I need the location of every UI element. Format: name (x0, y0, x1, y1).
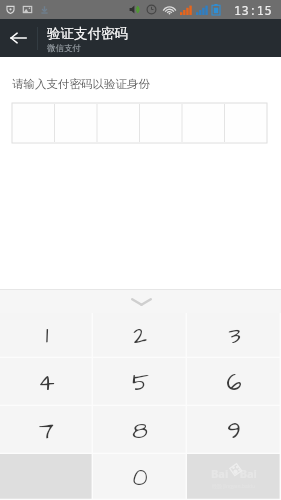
button[interactable]: 8 (93, 406, 187, 454)
staticText: 微信支付 (47, 43, 81, 54)
staticText: 5 (132, 366, 149, 399)
staticText: 6 (226, 366, 242, 399)
staticText: 8 (132, 414, 148, 447)
staticText: 验证支付密码 (47, 25, 128, 42)
button[interactable]: 3 (187, 313, 281, 358)
button[interactable]: 6 (187, 358, 281, 406)
button[interactable]: Blank (0, 454, 93, 500)
button[interactable]: 1 (0, 313, 93, 358)
staticText: 9 (227, 414, 241, 447)
staticText: 2 (133, 319, 147, 352)
staticText: 请输入支付密码以验证身份 (12, 77, 150, 91)
button[interactable]: 4 (0, 358, 93, 406)
button[interactable]: Back (0, 19, 36, 57)
button[interactable]: Delete (187, 454, 281, 500)
staticText: Bai Bai (211, 466, 257, 481)
button[interactable]: Hide keyboard (118, 290, 164, 313)
staticText: 13:15 (234, 2, 273, 18)
staticText: 3 (228, 319, 241, 352)
staticText: 7 (39, 414, 54, 447)
button[interactable]: 7 (0, 406, 93, 454)
button[interactable]: 9 (187, 406, 281, 454)
staticText: 0 (132, 461, 148, 494)
button[interactable]: 2 (93, 313, 187, 358)
staticText: 4 (38, 366, 55, 399)
staticText: 1 (45, 319, 49, 352)
button[interactable]: 5 (93, 358, 187, 406)
button[interactable]: 0 (93, 454, 187, 500)
